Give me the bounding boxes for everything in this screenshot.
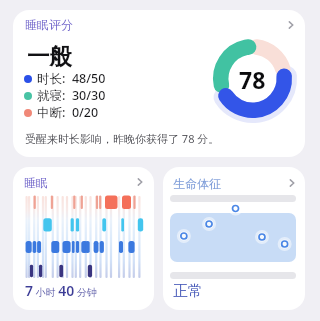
button[interactable]: 睡眠评分 — [13, 10, 305, 157]
staticText: 生命体征 — [173, 176, 221, 191]
staticText: 受醒来时长影响，昨晚你获得了 78 分。 — [25, 131, 220, 146]
button[interactable]: 时长: 48/50 — [24, 70, 106, 87]
button[interactable]: Open details — [286, 177, 298, 189]
staticText: 一般 — [27, 42, 72, 70]
staticText: 就寝: 30/30 — [37, 87, 106, 104]
staticText: 正常 — [173, 282, 203, 301]
staticText: 睡眠 — [24, 175, 48, 190]
button[interactable]: 生命体征 — [163, 167, 305, 310]
staticText: 睡眠评分 — [25, 17, 73, 32]
button[interactable]: Open details — [285, 19, 297, 31]
staticText: 中断: 0/20 — [37, 104, 99, 121]
staticText: 78 — [239, 64, 266, 95]
button[interactable]: Open details — [134, 176, 146, 188]
button[interactable]: 睡眠 — [13, 167, 154, 310]
staticText: 时长: 48/50 — [37, 70, 106, 87]
button[interactable]: 就寝: 30/30 — [24, 87, 106, 104]
staticText: 7 小时 40 分钟 — [25, 281, 97, 300]
button[interactable]: 中断: 0/20 — [24, 104, 99, 121]
